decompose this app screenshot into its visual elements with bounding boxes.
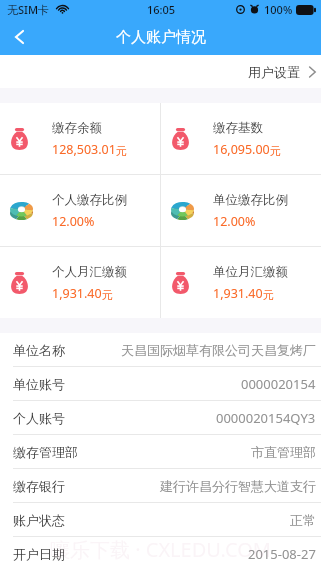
staticText: 16:05 <box>147 2 176 17</box>
button[interactable]: 单位账号 <box>0 367 321 400</box>
staticText: 16,095.00 <box>213 141 270 158</box>
staticText: 缴存管理部 <box>13 444 78 460</box>
staticText: 元 <box>116 144 127 158</box>
staticText: 缴存余额 <box>52 120 102 136</box>
button[interactable]: 个人账号 <box>0 401 321 434</box>
staticText: 开户日期 <box>13 546 65 562</box>
staticText: 单位月汇缴额 <box>213 264 288 280</box>
staticText: 单位名称 <box>13 342 65 358</box>
staticText: 用户设置 <box>248 64 300 80</box>
button[interactable]: 单位月汇缴额 <box>161 247 321 318</box>
staticText: 128,503.01 <box>52 141 116 158</box>
staticText: 账户状态 <box>13 512 65 528</box>
button[interactable]: 缴存银行 <box>0 469 321 502</box>
staticText: 100% <box>264 2 293 17</box>
staticText: 个人账号 <box>13 410 65 426</box>
staticText: 0000020154 <box>241 375 316 393</box>
staticText: 单位缴存比例 <box>213 192 288 208</box>
staticText: 12.00% <box>52 213 95 230</box>
button[interactable]: 开户日期 <box>0 537 321 570</box>
staticText: 正常 <box>290 512 316 528</box>
staticText: 1,931.40 <box>52 285 102 302</box>
staticText: 嚷乐下载 · CXLEDU.COM <box>50 536 271 563</box>
button[interactable]: 缴存管理部 <box>0 435 321 468</box>
button[interactable]: 单位缴存比例 <box>161 175 321 246</box>
staticText: 2015-08-27 <box>248 545 316 563</box>
button[interactable]: Back <box>7 26 31 50</box>
staticText: 建行许昌分行智慧大道支行 <box>160 478 316 494</box>
staticText: 个人账户情况 <box>116 28 206 47</box>
staticText: 1,931.40 <box>213 285 263 302</box>
staticText: 元 <box>263 288 274 302</box>
staticText: 0000020154QY3 <box>216 409 316 427</box>
button[interactable]: 单位名称 <box>0 333 321 366</box>
staticText: 单位账号 <box>13 376 65 392</box>
staticText: 市直管理部 <box>251 444 316 460</box>
staticText: 缴存银行 <box>13 478 65 494</box>
button[interactable]: 账户状态 <box>0 503 321 536</box>
button[interactable]: 缴存基数 <box>161 103 321 174</box>
staticText: 12.00% <box>213 213 256 230</box>
button[interactable]: 用户设置 <box>0 55 321 88</box>
staticText: 元 <box>270 144 281 158</box>
staticText: 元 <box>102 288 113 302</box>
staticText: 个人月汇缴额 <box>52 264 127 280</box>
staticText: 天昌国际烟草有限公司天昌复烤厂 <box>121 342 316 358</box>
staticText: 无SIM卡 <box>7 2 50 17</box>
button[interactable]: 个人缴存比例 <box>0 175 160 246</box>
button[interactable]: 个人月汇缴额 <box>0 247 160 318</box>
staticText: 缴存基数 <box>213 120 263 136</box>
staticText: 个人缴存比例 <box>52 192 127 208</box>
button[interactable]: 缴存余额 <box>0 103 160 174</box>
